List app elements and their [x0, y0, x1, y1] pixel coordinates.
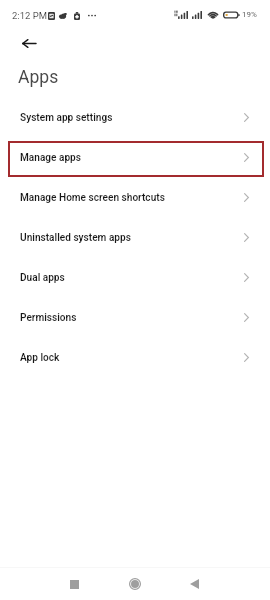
button[interactable]: System app settings — [0, 98, 270, 138]
staticText: Manage apps — [20, 152, 81, 164]
staticText: App lock — [20, 352, 60, 364]
staticText: Uninstalled system apps — [20, 232, 131, 244]
button[interactable]: Recent apps — [62, 572, 86, 596]
staticText: Permissions — [20, 312, 77, 324]
button[interactable]: Dual apps — [0, 258, 270, 298]
button[interactable]: Manage apps — [0, 138, 270, 178]
button[interactable]: Back — [182, 572, 206, 596]
button[interactable]: Home — [123, 572, 147, 596]
button[interactable]: Manage Home screen shortcuts — [0, 178, 270, 218]
button[interactable]: Uninstalled system apps — [0, 218, 270, 258]
staticText: Dual apps — [20, 272, 65, 284]
staticText: Apps — [18, 67, 59, 88]
staticText: Manage Home screen shortcuts — [20, 192, 165, 204]
button[interactable]: Back — [17, 31, 41, 55]
button[interactable]: App lock — [0, 338, 270, 378]
staticText: 19% — [242, 10, 257, 19]
button[interactable]: Permissions — [0, 298, 270, 338]
staticText: 2:12 PM — [12, 10, 47, 21]
staticText: System app settings — [20, 112, 113, 124]
